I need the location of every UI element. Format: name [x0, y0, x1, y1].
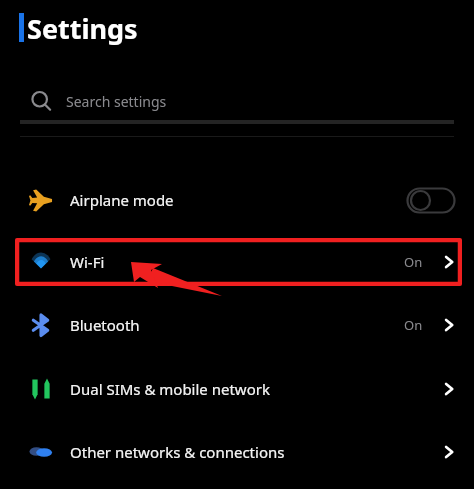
- staticText: On: [404, 316, 430, 334]
- button[interactable]: Wi-Fi: [0, 238, 474, 286]
- button[interactable]: Other networks & connections: [0, 428, 474, 476]
- other: Open: [440, 253, 458, 271]
- button[interactable]: Airplane mode: [0, 176, 474, 224]
- button[interactable]: Bluetooth: [0, 301, 474, 349]
- button[interactable]: Dual SIMs & mobile network: [0, 365, 474, 413]
- staticText: On: [404, 253, 430, 271]
- other: Search: [30, 90, 52, 112]
- staticText: Settings: [27, 10, 138, 47]
- other: Open: [440, 316, 458, 334]
- staticText: Other networks & connections: [70, 442, 285, 462]
- other: Open: [440, 443, 458, 461]
- other: Open: [440, 380, 458, 398]
- staticText: Wi-Fi: [70, 252, 105, 272]
- other: Airplane mode toggle, off: [406, 187, 456, 214]
- staticText: Bluetooth: [70, 315, 140, 335]
- staticText: Dual SIMs & mobile network: [70, 379, 270, 399]
- staticText: Search settings: [66, 92, 167, 111]
- staticText: Airplane mode: [70, 190, 174, 210]
- button[interactable]: Search: [0, 83, 474, 119]
